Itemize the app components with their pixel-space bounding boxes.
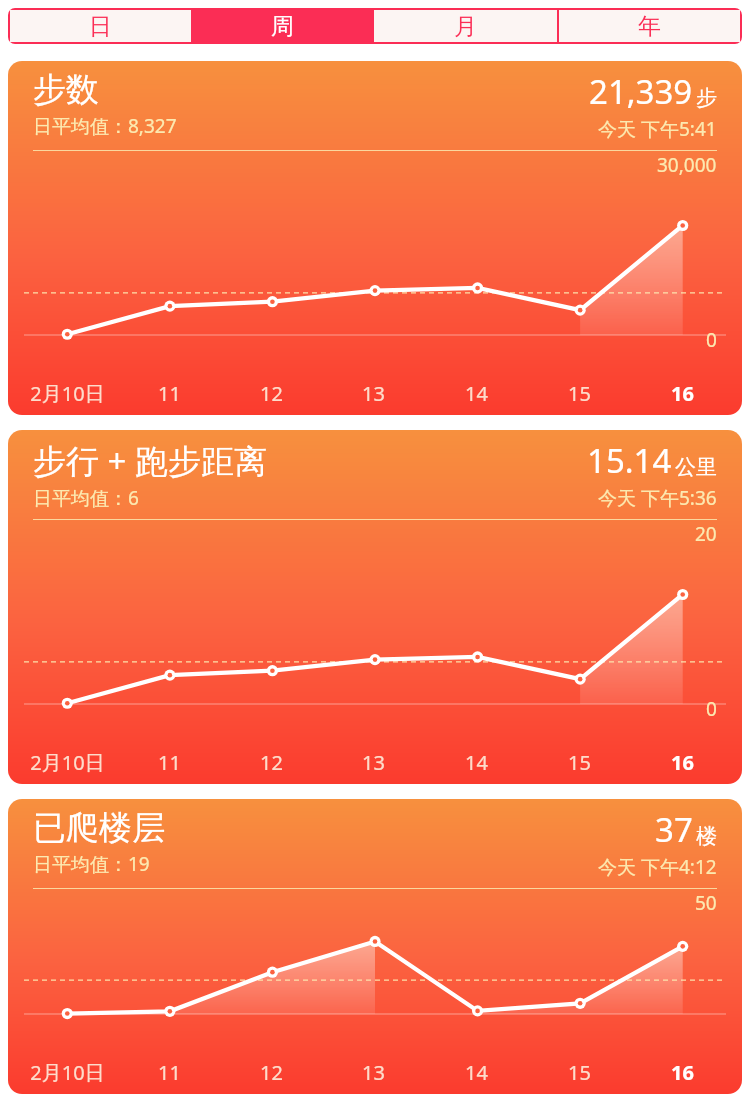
button[interactable]: 步行 + 跑步距离 xyxy=(8,430,742,784)
button[interactable]: 步数 xyxy=(8,61,742,415)
staticText: 日平均值：8,327 xyxy=(33,113,177,139)
staticText: 37 xyxy=(655,807,693,852)
staticText: 13 xyxy=(362,380,385,407)
staticText: 16 xyxy=(671,749,694,776)
staticText: 日 xyxy=(89,12,112,41)
staticText: 日平均值：6 xyxy=(33,485,139,511)
staticText: 15 xyxy=(568,1059,591,1086)
staticText: 日平均值：19 xyxy=(33,851,150,877)
button[interactable]: 年 xyxy=(559,10,740,42)
button[interactable]: 月 xyxy=(374,10,557,42)
staticText: 公里 xyxy=(675,454,717,480)
staticText: 15 xyxy=(568,380,591,407)
staticText: 步数 xyxy=(33,69,99,111)
staticText: 12 xyxy=(260,380,283,407)
staticText: 今天 下午5:36 xyxy=(598,485,717,511)
staticText: 12 xyxy=(260,749,283,776)
staticText: 今天 下午4:12 xyxy=(598,854,717,880)
staticText: 已爬楼层 xyxy=(33,807,165,849)
staticText: 2月10日 xyxy=(30,380,105,407)
staticText: 15.14 xyxy=(587,438,672,483)
staticText: 步行 + 跑步距离 xyxy=(33,438,268,483)
staticText: 步 xyxy=(696,85,717,111)
staticText: 月 xyxy=(454,12,477,41)
staticText: 楼 xyxy=(696,823,717,849)
staticText: 15 xyxy=(568,749,591,776)
staticText: 周 xyxy=(271,12,294,41)
staticText: 2月10日 xyxy=(30,1059,105,1086)
staticText: 今天 下午5:41 xyxy=(598,116,717,142)
staticText: 21,339 xyxy=(589,69,693,114)
staticText: 年 xyxy=(638,12,661,41)
staticText: 13 xyxy=(362,749,385,776)
staticText: 30,000 xyxy=(657,152,717,178)
button[interactable]: 已爬楼层 xyxy=(8,799,742,1094)
staticText: 13 xyxy=(362,1059,385,1086)
staticText: 14 xyxy=(465,1059,488,1086)
staticText: 16 xyxy=(671,1059,694,1086)
button[interactable]: 日 xyxy=(10,10,191,42)
button[interactable]: 周 xyxy=(191,10,374,42)
staticText: 0 xyxy=(706,696,717,722)
staticText: 12 xyxy=(260,1059,283,1086)
staticText: 2月10日 xyxy=(30,749,105,776)
staticText: 11 xyxy=(158,1059,181,1086)
staticText: 0 xyxy=(706,327,717,353)
staticText: 11 xyxy=(158,749,181,776)
staticText: 20 xyxy=(695,521,717,547)
staticText: 16 xyxy=(671,380,694,407)
staticText: 14 xyxy=(465,749,488,776)
staticText: 11 xyxy=(158,380,181,407)
staticText: 14 xyxy=(465,380,488,407)
staticText: 50 xyxy=(695,890,717,916)
